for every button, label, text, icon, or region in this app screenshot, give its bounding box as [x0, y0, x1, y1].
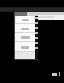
button[interactable] [28, 12, 64, 20]
button[interactable] [15, 42, 35, 52]
button[interactable] [15, 33, 35, 42]
button[interactable] [15, 16, 35, 24]
button[interactable] [15, 24, 35, 33]
button[interactable]: Scroll [35, 16, 38, 60]
button[interactable]: Status [52, 72, 60, 76]
